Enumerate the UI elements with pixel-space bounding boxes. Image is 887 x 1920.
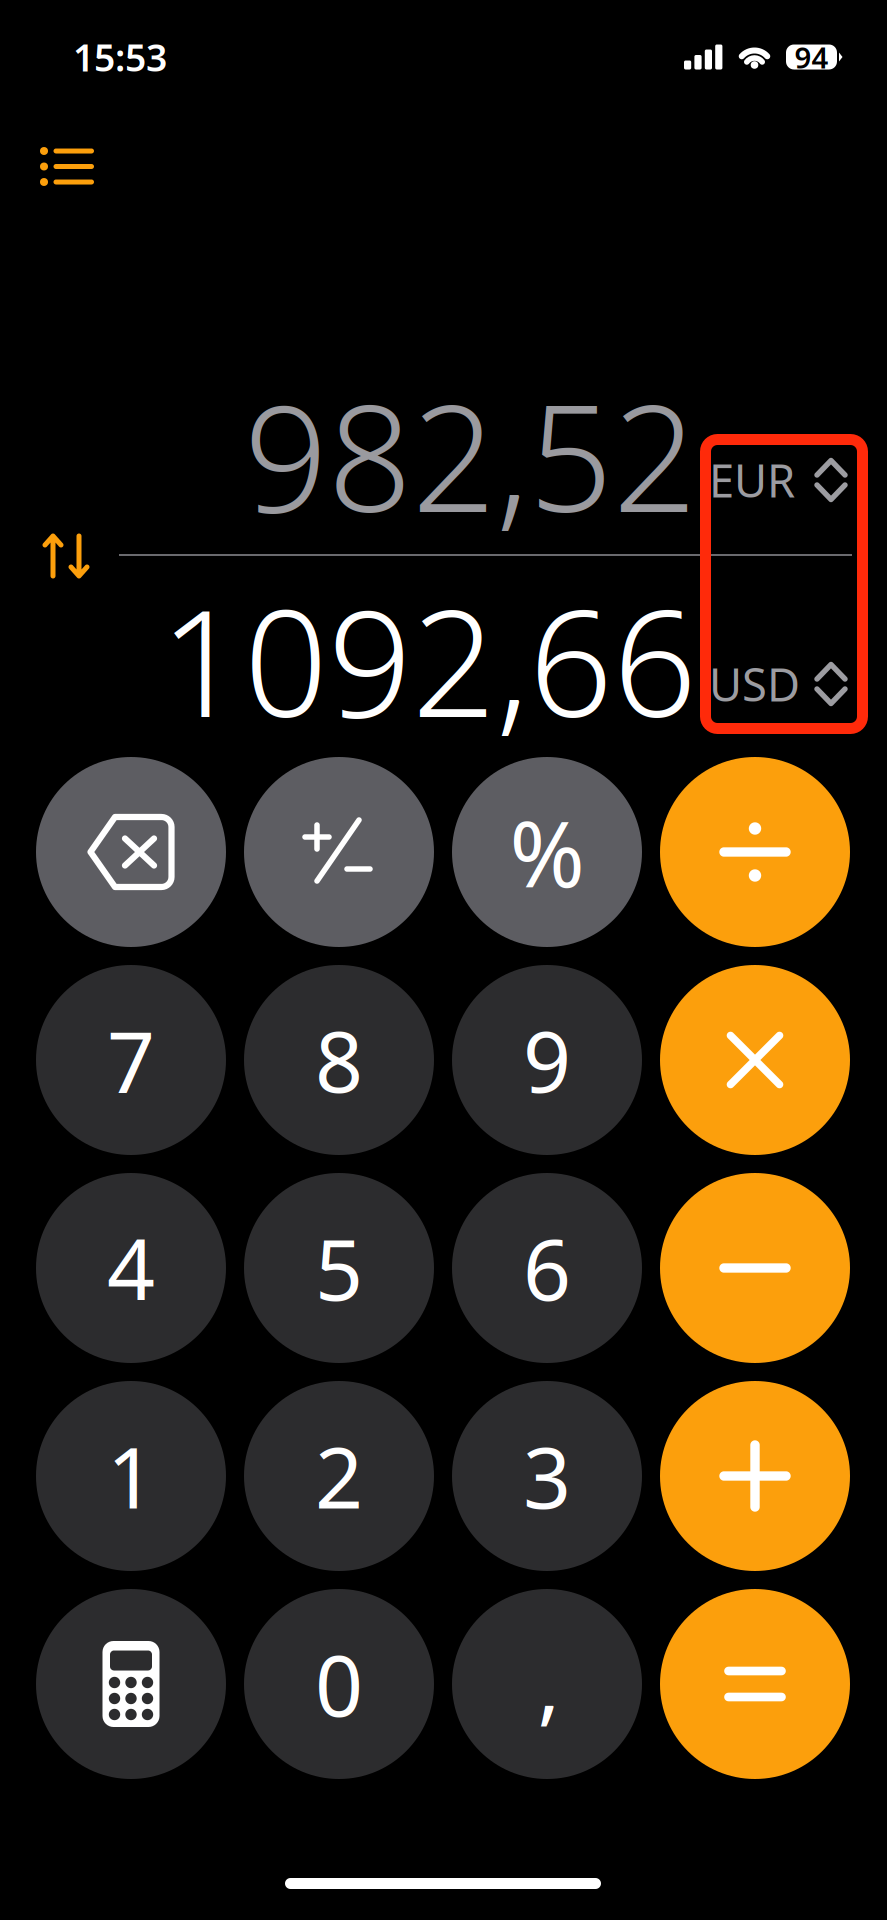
staticText: 5 [315,1212,363,1324]
button[interactable]: 9 [452,965,642,1155]
button[interactable]: Add [660,1381,850,1571]
staticText: 15:53 [73,32,167,82]
staticText: % [509,792,584,912]
button[interactable]: 0 [244,1589,434,1779]
staticText: , [537,1627,560,1739]
button[interactable]: Delete [36,757,226,947]
button[interactable]: 2 [244,1381,434,1571]
staticText: 982,52 [244,358,697,552]
button[interactable]: 5 [244,1173,434,1363]
button[interactable]: Percent [452,757,642,947]
staticText: 94 [794,37,828,76]
button[interactable]: 3 [452,1381,642,1571]
button[interactable]: Subtract [660,1173,850,1363]
staticText: 1092,66 [160,563,697,757]
button[interactable]: Swap currencies [30,519,104,593]
staticText: 7 [107,1004,155,1116]
button[interactable]: Multiply [660,965,850,1155]
staticText: 2 [315,1420,363,1532]
button[interactable]: 1 [36,1381,226,1571]
button[interactable]: Equals [660,1589,850,1779]
staticText: 0 [315,1628,363,1740]
button[interactable]: Decimal separator [452,1589,642,1779]
button[interactable]: 8 [244,965,434,1155]
staticText: 9 [523,1004,571,1116]
button[interactable]: 4 [36,1173,226,1363]
button[interactable]: Calculator [36,1589,226,1779]
button[interactable]: USD [709,656,869,712]
staticText: EUR [709,450,795,510]
staticText: 1 [107,1420,155,1532]
staticText: 6 [523,1212,571,1324]
button[interactable]: 7 [36,965,226,1155]
staticText: 8 [315,1004,363,1116]
staticText: 4 [107,1212,155,1324]
button[interactable]: Toggle sign [244,757,434,947]
button[interactable]: History [20,125,114,208]
staticText: USD [709,654,800,714]
button[interactable]: Divide [660,757,850,947]
button[interactable]: 6 [452,1173,642,1363]
staticText: 3 [523,1420,571,1532]
button[interactable]: EUR [709,452,869,508]
